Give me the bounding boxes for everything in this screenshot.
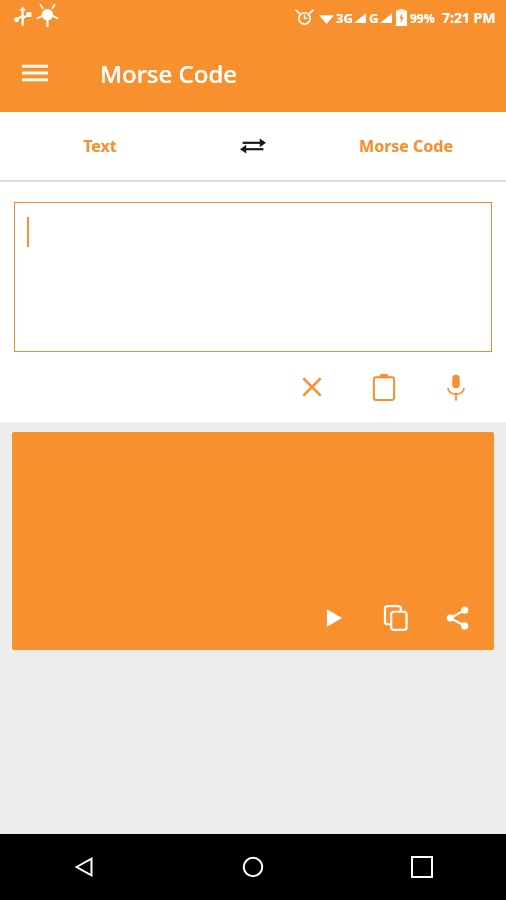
staticText: Morse Code (359, 135, 453, 157)
button[interactable] (14, 202, 492, 352)
button[interactable]: Play morse code (312, 596, 356, 640)
button[interactable]: Back (60, 843, 108, 891)
button[interactable]: Voice input (434, 365, 478, 409)
staticText: G (369, 9, 379, 27)
button[interactable]: Clear text (290, 365, 334, 409)
button[interactable]: Recent apps (398, 843, 446, 891)
button[interactable]: Open navigation menu (10, 48, 60, 98)
staticText: 7:21 PM (442, 8, 496, 27)
staticText: 3G (336, 9, 353, 27)
button[interactable]: Morse Code (306, 112, 506, 180)
button[interactable]: Copy to clipboard (374, 596, 418, 640)
button[interactable]: Play morse code (12, 432, 494, 650)
button[interactable]: Share (436, 596, 480, 640)
button[interactable]: Swap translation direction (221, 114, 285, 178)
button[interactable]: Text (0, 112, 200, 180)
staticText: Morse Code (100, 57, 238, 90)
staticText: Text (83, 135, 117, 157)
staticText: 99% (410, 10, 435, 26)
button[interactable]: Home (229, 843, 277, 891)
button[interactable]: Paste from clipboard (362, 365, 406, 409)
